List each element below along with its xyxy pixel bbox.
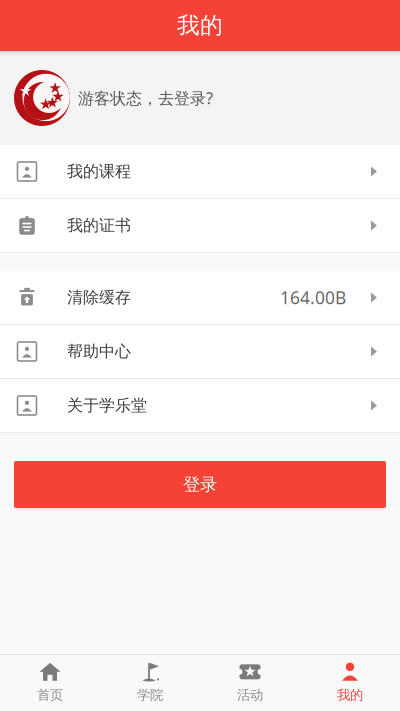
button[interactable]: 我的 (300, 655, 400, 711)
staticText: 我的证书 (67, 216, 131, 235)
button[interactable]: 我的课程 (0, 145, 400, 198)
staticText: 首页 (37, 687, 63, 703)
button[interactable]: 关于学乐堂 (0, 379, 400, 432)
staticText: 164.00B (280, 286, 346, 309)
staticText: 清除缓存 (67, 288, 131, 307)
staticText: 游客状态，去登录? (78, 87, 213, 109)
staticText: 活动 (237, 687, 263, 703)
button[interactable]: 游客状态，去登录? (0, 51, 400, 145)
staticText: 登录 (183, 474, 217, 495)
button[interactable]: 帮助中心 (0, 325, 400, 378)
staticText: 学院 (137, 687, 163, 703)
staticText: 我的课程 (67, 162, 131, 181)
staticText: 帮助中心 (67, 342, 131, 361)
button[interactable]: 学院 (100, 655, 200, 711)
staticText: 我的 (337, 687, 363, 703)
button[interactable]: 我的证书 (0, 199, 400, 252)
button[interactable]: 活动 (200, 655, 300, 711)
staticText: 关于学乐堂 (67, 396, 147, 415)
button[interactable]: 首页 (0, 655, 100, 711)
button[interactable]: 清除缓存 (0, 271, 400, 324)
button[interactable]: 登录 (14, 461, 386, 508)
staticText: 我的 (177, 12, 223, 39)
